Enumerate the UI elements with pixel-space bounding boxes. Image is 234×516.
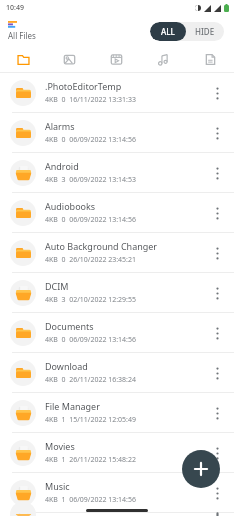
staticText: ALL — [161, 26, 175, 37]
button[interactable]: More options — [206, 194, 228, 232]
button[interactable]: ALL — [150, 22, 186, 41]
button[interactable]: Alarms — [0, 113, 234, 152]
staticText: File Manager — [45, 400, 100, 412]
button[interactable]: More options — [206, 394, 228, 432]
staticText: .PhotoEditorTemp — [45, 80, 122, 92]
staticText: 4KB 0 06/09/2022 13:14:56 — [45, 215, 137, 225]
button[interactable]: Files — [0, 46, 46, 72]
button[interactable]: .PhotoEditorTemp — [0, 73, 234, 112]
button[interactable]: Documents — [0, 313, 234, 352]
button[interactable]: Images — [46, 46, 93, 72]
staticText: Download — [45, 360, 88, 372]
button[interactable]: More options — [206, 474, 228, 512]
button[interactable]: Music — [0, 473, 234, 512]
staticText: Auto Background Changer — [45, 240, 158, 252]
staticText: Audiobooks — [45, 200, 96, 212]
staticText: 4KB 0 16/11/2022 13:31:33 — [45, 95, 137, 105]
button[interactable]: All Files — [8, 21, 36, 41]
button[interactable]: More options — [206, 74, 228, 112]
button[interactable]: More options — [206, 154, 228, 192]
button[interactable]: Download — [0, 353, 234, 392]
staticText: All Files — [8, 30, 36, 41]
button[interactable]: More options — [206, 114, 228, 152]
staticText: 4KB 1 06/09/2022 13:14:56 — [45, 495, 137, 505]
button[interactable]: More options — [206, 314, 228, 352]
staticText: 4KB 1 26/11/2022 15:48:22 — [45, 455, 137, 465]
button[interactable]: File Manager — [0, 393, 234, 432]
staticText: DCIM — [45, 280, 69, 292]
button[interactable]: Movies — [0, 433, 234, 472]
staticText: Documents — [45, 320, 94, 332]
staticText: 10:49 — [6, 3, 24, 13]
staticText: 4KB 1 15/11/2022 12:05:49 — [45, 415, 137, 425]
button[interactable]: More options — [206, 513, 228, 516]
button[interactable]: More options — [206, 234, 228, 272]
staticText: Android — [45, 160, 79, 172]
staticText: 4KB 0 06/09/2022 13:14:56 — [45, 135, 137, 145]
button[interactable]: Videos — [93, 46, 140, 72]
button[interactable]: More options — [206, 274, 228, 312]
button[interactable]: Audio — [140, 46, 187, 72]
staticText: HIDE — [195, 26, 215, 37]
button[interactable]: DCIM — [0, 273, 234, 312]
button[interactable]: More options — [206, 434, 228, 472]
button[interactable]: HIDE — [186, 22, 224, 41]
button[interactable]: Documents — [187, 46, 234, 72]
button[interactable]: Add — [182, 450, 220, 488]
staticText: 4KB 0 26/10/2022 23:45:21 — [45, 255, 137, 265]
staticText: 4KB 0 06/09/2022 13:14:56 — [45, 335, 137, 345]
button[interactable]: Notifications — [0, 513, 234, 516]
staticText: 4KB 3 02/10/2022 12:29:55 — [45, 295, 137, 305]
button[interactable]: Auto Background Changer — [0, 233, 234, 272]
staticText: Alarms — [45, 120, 75, 132]
staticText: Music — [45, 480, 70, 492]
button[interactable]: Android — [0, 153, 234, 192]
button[interactable]: More options — [206, 354, 228, 392]
button[interactable]: Audiobooks — [0, 193, 234, 232]
staticText: 4KB 0 26/11/2022 16:38:24 — [45, 375, 137, 385]
staticText: 4KB 3 06/09/2022 13:14:53 — [45, 175, 137, 185]
staticText: Movies — [45, 440, 75, 452]
